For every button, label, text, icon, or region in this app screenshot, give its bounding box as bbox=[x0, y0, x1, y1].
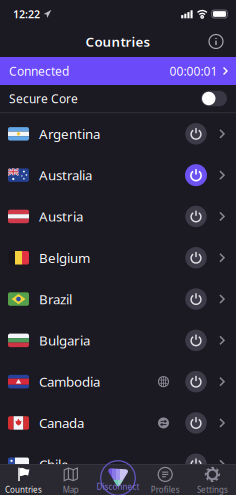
button[interactable]: Australia bbox=[0, 154, 236, 196]
staticText: Countries bbox=[5, 484, 42, 495]
staticText: Australia bbox=[39, 166, 92, 184]
button[interactable]: Brazil bbox=[0, 278, 236, 320]
staticText: Cambodia bbox=[39, 373, 100, 390]
staticText: 00:00:01 bbox=[169, 63, 217, 79]
button[interactable]: Map bbox=[47, 464, 94, 495]
button[interactable]: Cambodia bbox=[0, 361, 236, 402]
staticText: Brazil bbox=[39, 290, 72, 308]
staticText: Belgium bbox=[39, 249, 90, 267]
staticText: Canada bbox=[39, 414, 84, 432]
button[interactable]: Information bbox=[209, 35, 236, 49]
button[interactable]: Connect to Cambodia bbox=[185, 371, 207, 393]
button[interactable]: Countries bbox=[0, 464, 47, 495]
button[interactable]: Secure Core bbox=[201, 91, 236, 106]
button[interactable]: Austria bbox=[0, 196, 236, 237]
staticText: Secure Core bbox=[9, 90, 78, 106]
button[interactable]: Canada bbox=[0, 402, 236, 444]
button[interactable]: Connect to Brazil bbox=[185, 288, 207, 310]
staticText: Profiles bbox=[151, 484, 180, 495]
button[interactable]: Connect to Belgium bbox=[185, 247, 207, 269]
button[interactable]: Profiles bbox=[142, 464, 189, 495]
staticText: Connected bbox=[9, 63, 69, 79]
button[interactable]: Connected bbox=[0, 57, 236, 85]
button[interactable]: Argentina bbox=[0, 113, 236, 154]
button[interactable]: Disconnect from Australia bbox=[185, 164, 207, 186]
button[interactable]: Connect to Bulgaria bbox=[185, 329, 207, 351]
staticText: 12:22 bbox=[13, 7, 40, 21]
button[interactable]: Connect to Argentina bbox=[185, 123, 207, 145]
button[interactable]: Settings bbox=[189, 464, 236, 495]
button[interactable]: Bulgaria bbox=[0, 320, 236, 361]
button[interactable]: Disconnect bbox=[94, 464, 142, 495]
button[interactable]: Connect to Canada bbox=[185, 412, 207, 434]
button[interactable]: Belgium bbox=[0, 237, 236, 278]
staticText: Settings bbox=[197, 484, 228, 495]
button[interactable]: Connect to Chile bbox=[185, 453, 207, 475]
staticText: Argentina bbox=[39, 125, 100, 143]
staticText: Disconnect bbox=[96, 481, 139, 492]
staticText: Countries bbox=[85, 33, 150, 50]
staticText: Map bbox=[63, 484, 79, 495]
staticText: Chile bbox=[39, 455, 69, 473]
button[interactable]: Chile bbox=[0, 444, 236, 485]
staticText: Bulgaria bbox=[39, 331, 90, 349]
staticText: Austria bbox=[39, 208, 83, 225]
button[interactable]: Connect to Austria bbox=[185, 205, 207, 227]
